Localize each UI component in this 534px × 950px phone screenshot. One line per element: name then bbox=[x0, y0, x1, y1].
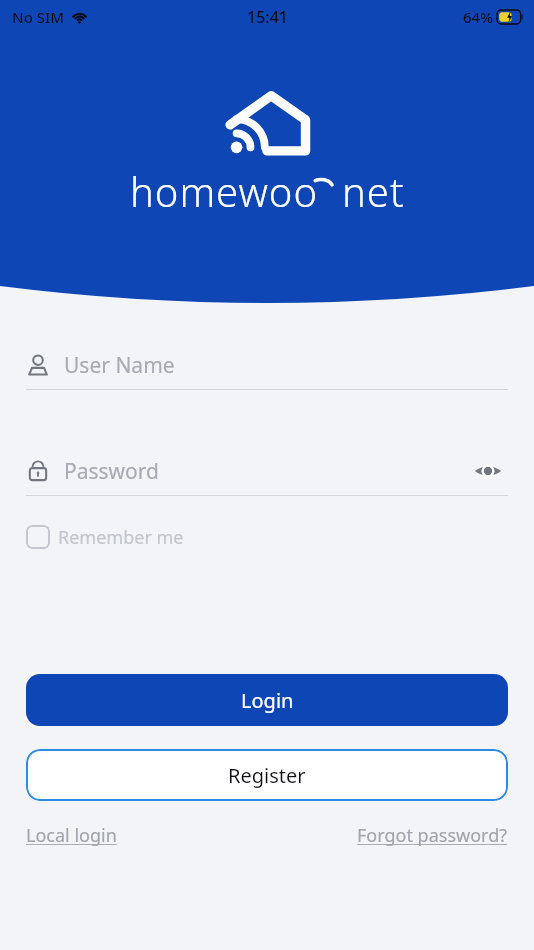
button[interactable]: Login bbox=[26, 674, 508, 726]
button[interactable]: User Name bbox=[26, 341, 508, 389]
button[interactable]: Password bbox=[26, 447, 508, 495]
button[interactable]: Forgot password? bbox=[357, 819, 508, 852]
button[interactable]: Show password bbox=[468, 451, 508, 491]
staticText: homewoo bbox=[130, 164, 318, 218]
button[interactable]: Local login bbox=[26, 819, 117, 852]
staticText: Remember me bbox=[58, 525, 184, 550]
staticText: Password bbox=[64, 457, 159, 486]
staticText: Login bbox=[241, 687, 294, 714]
staticText: Register bbox=[228, 762, 306, 789]
button[interactable]: Remember me bbox=[26, 518, 184, 556]
staticText: 15:41 bbox=[247, 6, 288, 28]
staticText: Local login bbox=[26, 823, 117, 848]
staticText: Forgot password? bbox=[357, 823, 508, 848]
button[interactable]: Register bbox=[26, 749, 508, 801]
staticText: No SIM bbox=[12, 7, 65, 27]
staticText: User Name bbox=[64, 351, 175, 380]
staticText: net bbox=[342, 164, 405, 218]
staticText: 64% bbox=[463, 7, 493, 27]
